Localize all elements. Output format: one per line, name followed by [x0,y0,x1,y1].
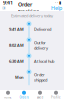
staticText: 6:30 AM [9,59,24,64]
staticText: Out for delivery [34,40,48,51]
staticText: 9:41 [3,0,13,6]
staticText: Mon [15,75,24,80]
button[interactable]: Orders [16,90,32,100]
staticText: Estimated delivery today [11,13,53,18]
staticText: Saved [36,96,43,99]
button[interactable]: Saved [32,90,48,100]
staticText: Delivered [34,27,51,32]
staticText: Orders [19,96,28,99]
button[interactable]: Track package [5,93,59,100]
button[interactable]: Home [0,90,16,100]
staticText: Order shipped [34,72,47,83]
staticText: Order tracking [18,1,39,15]
button[interactable]: Help [51,4,62,12]
staticText: Home [4,96,12,99]
staticText: Profile [51,96,61,99]
staticText: · · ▮ [55,0,61,5]
button[interactable]: Profile [48,90,64,100]
staticText: 8:02 AM [9,43,24,48]
button[interactable]: Back [2,6,6,10]
staticText: Track package [14,93,50,100]
staticText: 9:41 AM [9,27,24,32]
staticText: Help [51,4,62,12]
staticText: At local hub [34,59,54,64]
